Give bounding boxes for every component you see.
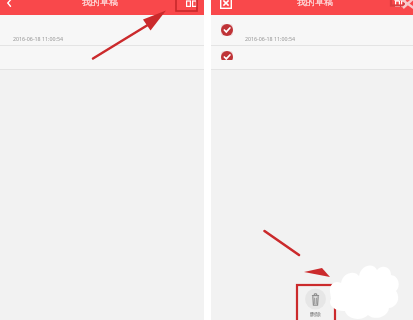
staticText: 删除 xyxy=(310,311,321,318)
button[interactable] xyxy=(0,15,204,46)
staticText: 2016-06-18 11:00:54 xyxy=(245,35,296,42)
button[interactable] xyxy=(211,46,413,70)
staticText: 我的草稿 xyxy=(297,0,333,7)
button[interactable]: Back xyxy=(0,0,20,15)
button[interactable]: Select items xyxy=(182,0,204,15)
staticText: 2016-06-18 11:00:54 xyxy=(13,35,64,42)
button[interactable]: Cancel selection xyxy=(211,0,231,15)
staticText: 我的草稿 xyxy=(82,0,118,7)
button[interactable] xyxy=(211,15,413,46)
button[interactable] xyxy=(0,46,204,70)
button[interactable]: 删除 xyxy=(299,288,332,320)
button[interactable]: Select items xyxy=(391,0,413,15)
